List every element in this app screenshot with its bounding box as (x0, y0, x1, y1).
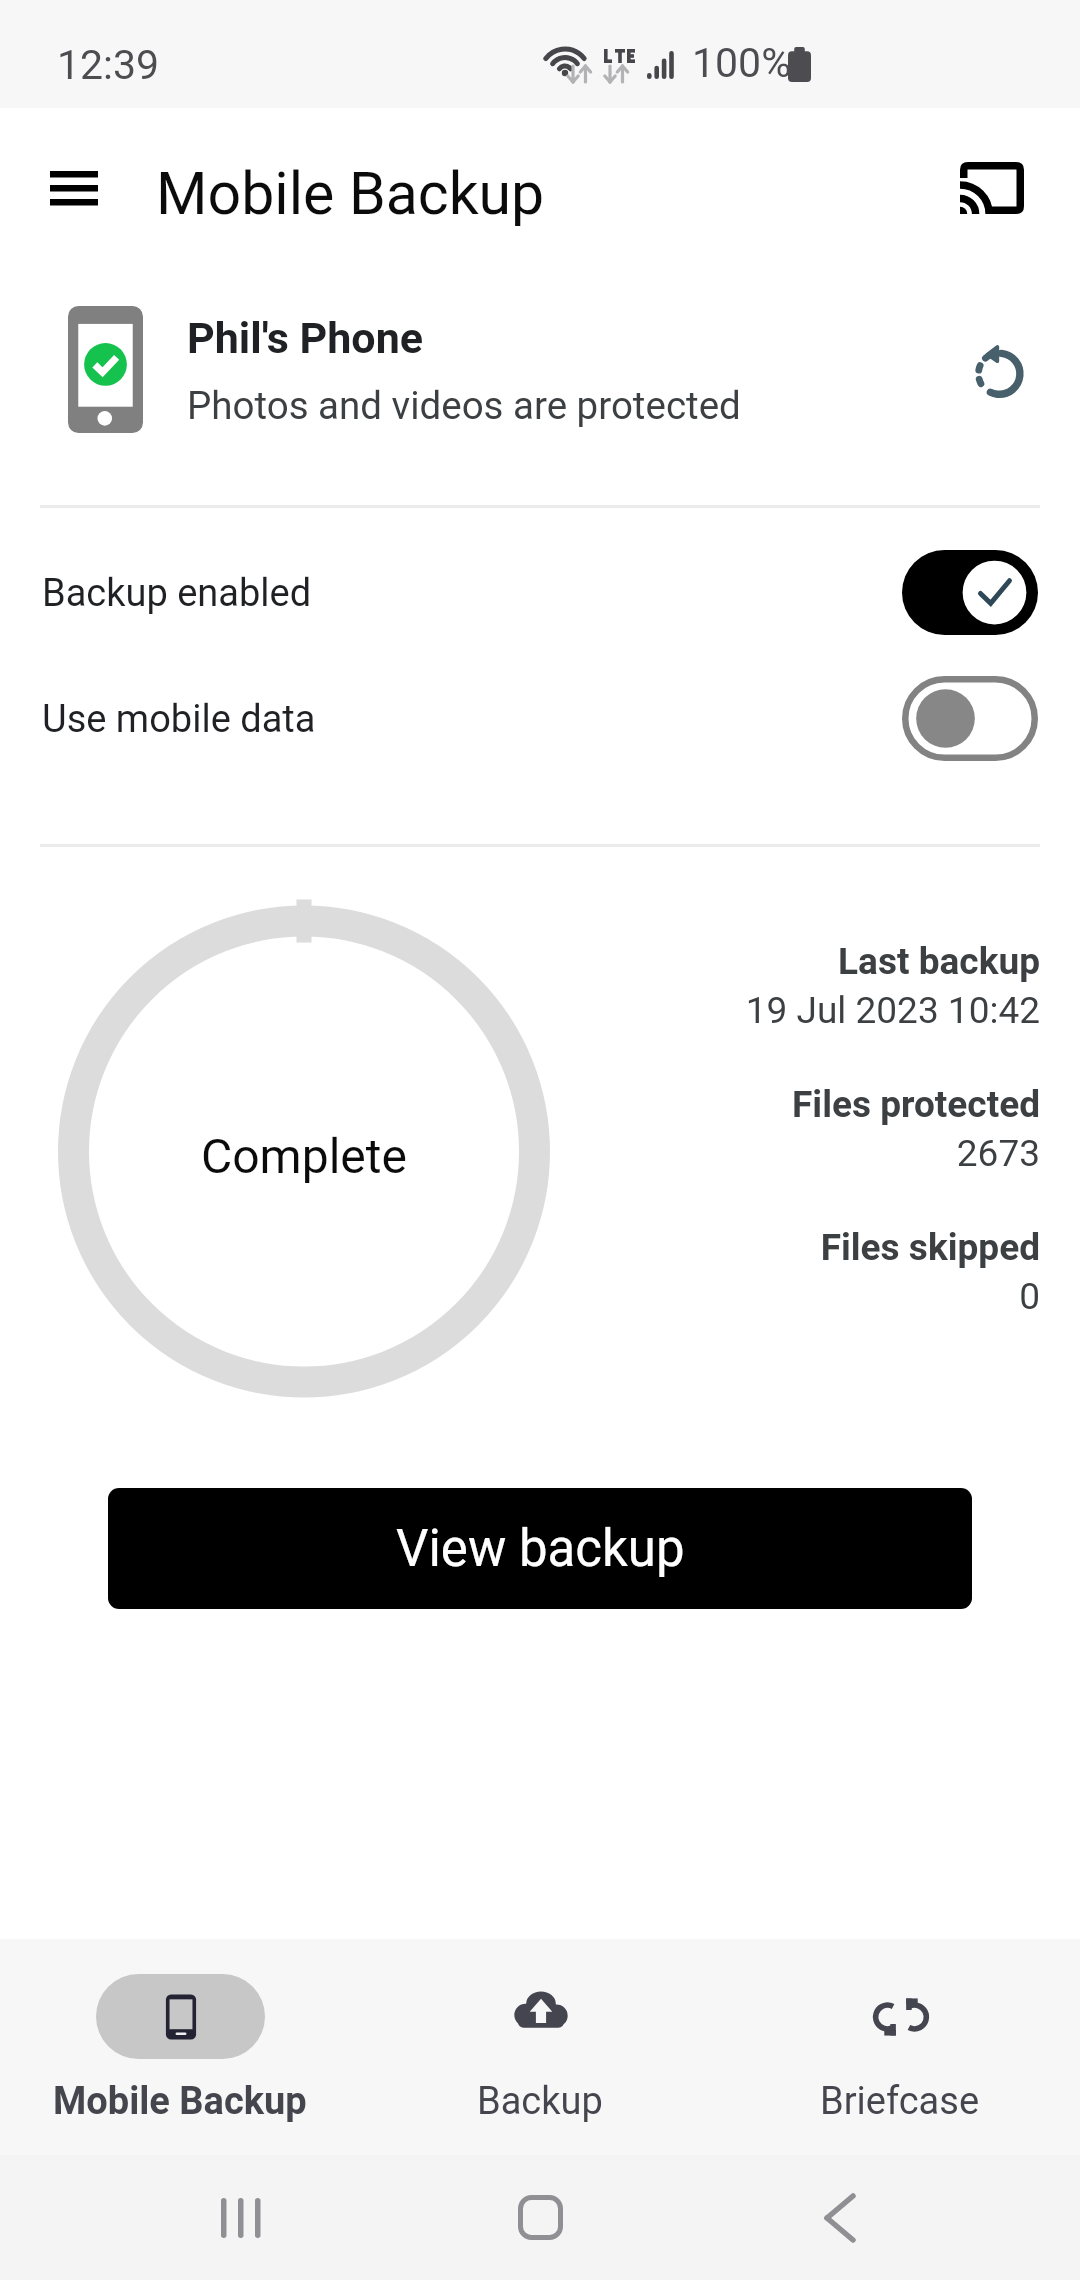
button[interactable]: Briefcase (720, 1939, 1080, 2155)
staticText: Complete (201, 1128, 407, 1184)
button[interactable]: Back (780, 2175, 900, 2260)
staticText: Photos and videos are protected (187, 383, 741, 428)
button[interactable]: Phil's Phone (0, 272, 1080, 462)
staticText: 12:39 (57, 41, 160, 89)
staticText: Files skipped (600, 1226, 1040, 1269)
staticText: 19 Jul 2023 10:42 (600, 989, 1040, 1032)
staticText: Use mobile data (42, 697, 316, 742)
staticText: 0 (600, 1275, 1040, 1318)
staticText: Last backup (600, 940, 1040, 983)
button[interactable]: Cast to device (944, 146, 1040, 230)
button[interactable]: Recent apps (180, 2175, 300, 2260)
staticText: Mobile Backup (156, 159, 545, 228)
staticText: 100% (692, 39, 792, 87)
staticText: Backup enabled (42, 571, 312, 616)
button[interactable]: Open navigation menu (30, 150, 118, 226)
button[interactable]: View backup (108, 1488, 972, 1609)
button[interactable]: Backup (360, 1939, 720, 2155)
staticText: Backup (477, 2079, 603, 2124)
staticText: Mobile Backup (53, 2079, 307, 2124)
button[interactable]: Use mobile data (0, 658, 1080, 778)
button[interactable]: Restore backup (948, 326, 1040, 418)
button[interactable]: Home (480, 2175, 600, 2260)
button[interactable]: Backup enabled (0, 532, 1080, 652)
staticText: Briefcase (820, 2079, 980, 2124)
staticText: View backup (396, 1519, 685, 1579)
button[interactable]: Mobile Backup (0, 1939, 360, 2155)
staticText: Files protected (600, 1083, 1040, 1126)
staticText: Phil's Phone (187, 313, 423, 363)
staticText: 2673 (600, 1132, 1040, 1175)
